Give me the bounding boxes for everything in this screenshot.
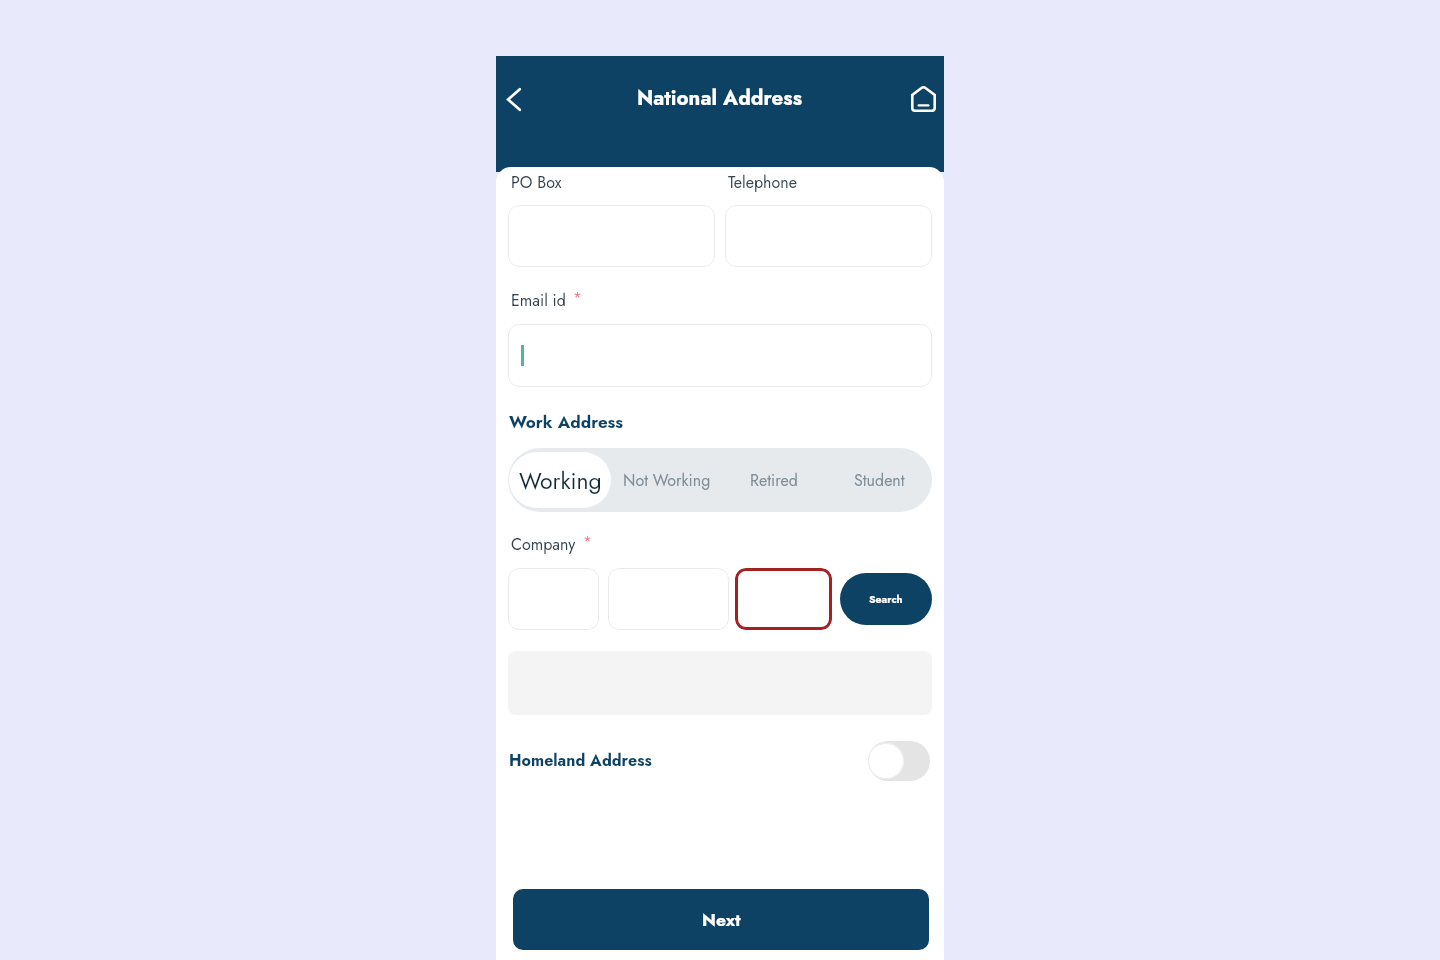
- button[interactable]: [508, 324, 932, 387]
- button[interactable]: Homeland Address toggle: [868, 741, 930, 781]
- button[interactable]: Back: [489, 75, 537, 123]
- staticText: Work Address: [509, 410, 624, 435]
- button[interactable]: Student: [826, 448, 932, 512]
- button[interactable]: [735, 568, 832, 630]
- staticText: PO Box: [511, 171, 562, 194]
- staticText: Working: [519, 464, 602, 497]
- staticText: Retired: [750, 469, 798, 492]
- button[interactable]: [608, 568, 729, 630]
- button[interactable]: [508, 568, 599, 630]
- button[interactable]: [508, 205, 715, 267]
- button[interactable]: Not Working: [612, 448, 721, 512]
- staticText: Search: [869, 592, 903, 607]
- button[interactable]: Working: [509, 452, 611, 508]
- staticText: *: [583, 530, 592, 552]
- staticText: Next: [702, 907, 741, 932]
- staticText: National Address: [637, 83, 803, 113]
- staticText: Student: [854, 469, 905, 492]
- staticText: Not Working: [623, 469, 711, 492]
- button[interactable]: Retired: [721, 448, 826, 512]
- staticText: Homeland Address: [509, 749, 652, 772]
- staticText: Telephone: [728, 171, 797, 194]
- staticText: Company: [511, 533, 576, 556]
- button[interactable]: Search: [840, 573, 932, 625]
- button[interactable]: [725, 205, 932, 267]
- button[interactable]: Next: [513, 889, 929, 950]
- staticText: *: [573, 286, 582, 308]
- button[interactable]: Home: [899, 74, 947, 122]
- staticText: Email id: [511, 289, 566, 312]
